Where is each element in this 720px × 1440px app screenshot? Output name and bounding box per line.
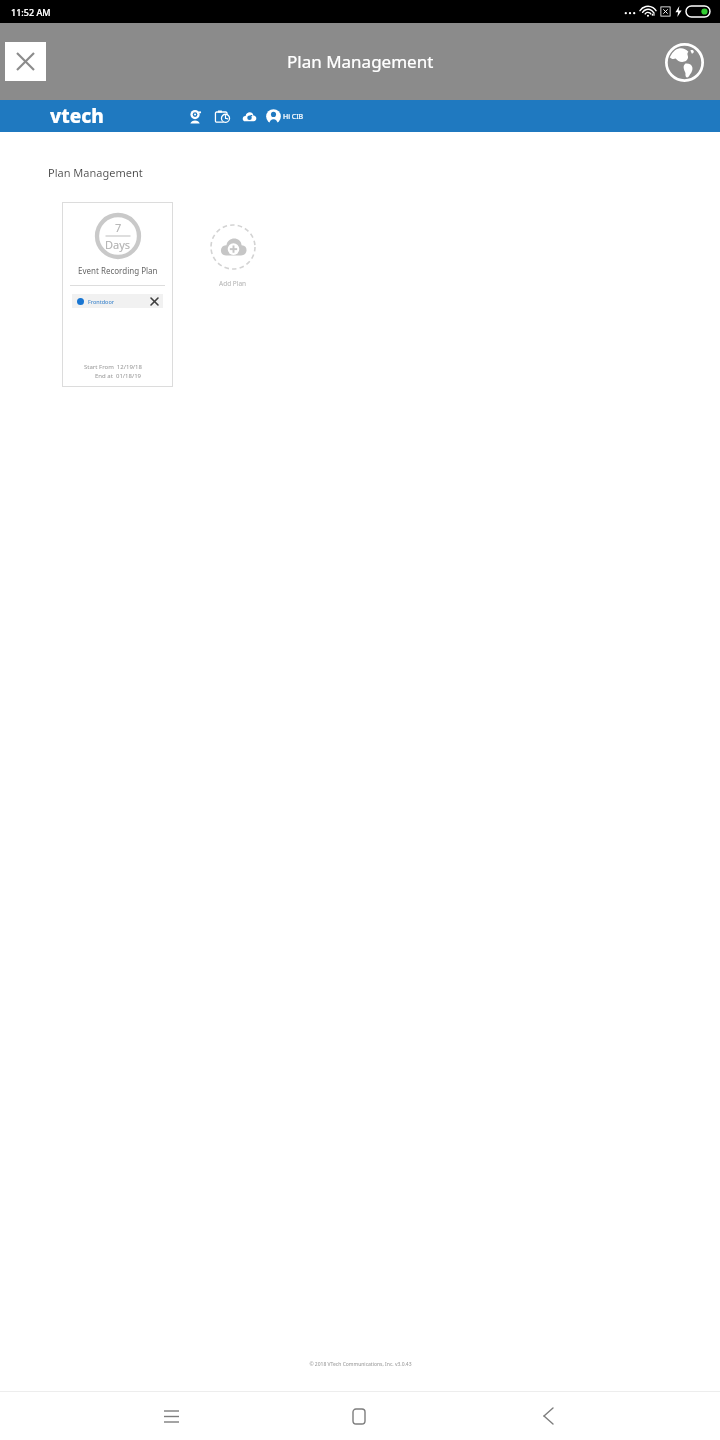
staticText: Event Recording Plan <box>78 265 158 276</box>
button[interactable]: vtech <box>50 103 104 129</box>
button[interactable]: Recordings <box>212 106 232 126</box>
button[interactable]: Cloud <box>239 106 259 126</box>
staticText: Plan Management <box>287 50 434 73</box>
button[interactable]: 7 <box>62 202 173 387</box>
button[interactable]: Language <box>663 41 705 83</box>
staticText: Plan Management <box>48 165 143 180</box>
button[interactable]: Close <box>5 42 46 81</box>
button[interactable]: Frontdoor <box>72 294 163 308</box>
button[interactable]: Back <box>531 1399 565 1433</box>
staticText: Start From 12/19/18 <box>84 363 142 371</box>
staticText: End at 01/18/19 <box>95 372 142 380</box>
staticText: 7 <box>115 220 122 235</box>
staticText: Hi CIB <box>283 112 304 122</box>
button[interactable]: Remove Frontdoor <box>148 295 161 308</box>
staticText: © 2018 VTech Communications, Inc. v3.0.4… <box>309 1361 412 1368</box>
staticText: Frontdoor <box>88 298 115 305</box>
staticText: 11:52 AM <box>11 6 51 18</box>
staticText: Add Plan <box>219 279 247 288</box>
button[interactable]: Hi CIB <box>266 109 304 124</box>
button[interactable]: Recents <box>154 1399 188 1433</box>
button[interactable]: Add Plan <box>210 224 256 288</box>
staticText: Days <box>105 237 131 252</box>
button[interactable]: Home <box>342 1399 376 1433</box>
button[interactable]: Cameras <box>185 106 205 126</box>
